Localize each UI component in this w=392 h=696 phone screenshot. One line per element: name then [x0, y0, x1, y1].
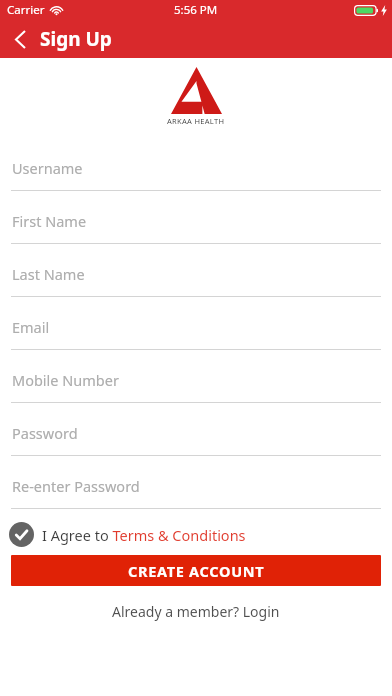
button[interactable]: First Name	[0, 199, 392, 252]
staticText: Re-enter Password	[12, 476, 140, 496]
button[interactable]: Last Name	[0, 252, 392, 305]
button[interactable]: Back	[0, 20, 40, 58]
staticText: Email	[12, 317, 50, 337]
staticText: Mobile Number	[12, 370, 119, 390]
staticText: ARKAA HEALTH	[167, 116, 225, 126]
staticText: I Agree to Terms & Conditions	[42, 525, 246, 545]
staticText: Carrier	[7, 2, 45, 18]
staticText: Last Name	[12, 264, 85, 284]
button[interactable]: Email	[0, 305, 392, 358]
staticText: CREATE ACCOUNT	[128, 561, 265, 581]
staticText: Sign Up	[40, 26, 112, 52]
button[interactable]: Password	[0, 411, 392, 464]
staticText: Password	[12, 423, 78, 443]
button[interactable]: Username	[0, 146, 392, 199]
staticText: First Name	[12, 211, 87, 231]
staticText: Username	[12, 158, 83, 178]
staticText: 5:56 PM	[174, 2, 218, 18]
button[interactable]: Mobile Number	[0, 358, 392, 411]
button[interactable]: Re-enter Password	[0, 464, 392, 517]
staticText: Already a member? Login	[112, 602, 280, 621]
button[interactable]: I Agree to Terms & Conditions	[9, 522, 392, 547]
button[interactable]: Already a member? Login	[0, 598, 392, 624]
button[interactable]: CREATE ACCOUNT	[11, 555, 381, 586]
